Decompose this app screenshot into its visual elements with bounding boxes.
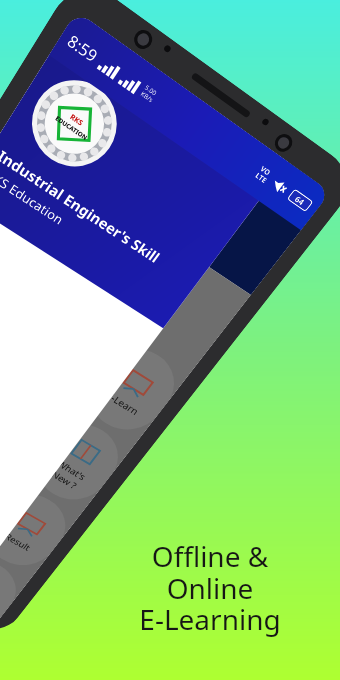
staticText: EDUCATION xyxy=(54,114,89,142)
staticText: Education xyxy=(0,152,121,255)
button[interactable]: Rate Us xyxy=(0,254,125,427)
button[interactable]: Courses xyxy=(0,226,48,359)
staticText: 64 xyxy=(293,193,308,208)
staticText: VO LTE xyxy=(253,164,274,185)
staticText: 5.00 KB/s xyxy=(139,83,159,104)
button[interactable]: About Us xyxy=(0,359,54,518)
staticText: Industrial Engineer's Skill xyxy=(0,145,164,267)
staticText: RKS xyxy=(68,112,86,129)
button[interactable]: Privacy Policy xyxy=(0,307,89,473)
button[interactable]: E-Learn xyxy=(74,332,192,445)
staticText: What's New ? xyxy=(48,457,88,492)
staticText: 8:59 xyxy=(64,29,102,66)
button[interactable]: Study xyxy=(0,280,130,408)
staticText: Result xyxy=(3,531,33,553)
button[interactable]: Result xyxy=(0,479,81,578)
button[interactable]: More xyxy=(0,546,31,633)
button[interactable]: Share xyxy=(0,198,163,379)
button[interactable]: What's New ? xyxy=(21,408,135,514)
staticText: Offline & Online E-Learning xyxy=(130,537,290,638)
staticText: E-Learn xyxy=(104,389,142,418)
button[interactable]: Jobs xyxy=(0,434,21,546)
staticText: Skill Development xyxy=(0,200,72,274)
staticText: Industrial Engineer's Skill xyxy=(23,110,224,258)
button[interactable]: About xyxy=(0,360,74,479)
staticText: RKS Education xyxy=(0,165,67,228)
